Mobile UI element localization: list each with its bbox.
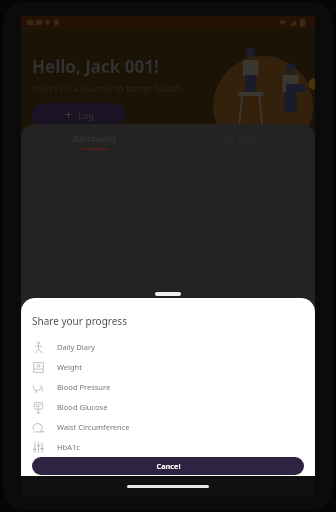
staticText: Daily Diary (57, 342, 95, 352)
button[interactable]: Blood Glucose (32, 397, 304, 417)
staticText: Blood Pressure (57, 382, 111, 392)
staticText: You're on a journey to better health (32, 82, 182, 94)
button[interactable]: Weight (32, 357, 304, 377)
staticText: My Goals (224, 134, 259, 145)
staticText: Weight (57, 362, 82, 372)
staticText: Blood Glucose (57, 402, 108, 412)
staticText: Waist Circumference (57, 422, 130, 432)
staticText: HbA1c (57, 442, 80, 452)
button[interactable]: HbA1c (32, 437, 304, 457)
staticText: Log (78, 109, 94, 121)
staticText: Hello, Jack 001! (32, 55, 159, 78)
button[interactable]: Log (32, 103, 126, 126)
button[interactable]: Waist Circumference (32, 417, 304, 437)
button[interactable]: Blood Pressure (32, 377, 304, 397)
button[interactable]: Daily Diary (32, 337, 304, 357)
staticText: Cancel (156, 461, 181, 471)
staticText: Share your progress (32, 314, 127, 328)
button[interactable]: Cancel (32, 457, 304, 475)
button[interactable]: Dashboard (21, 124, 168, 158)
staticText: Dashboard (73, 133, 116, 144)
